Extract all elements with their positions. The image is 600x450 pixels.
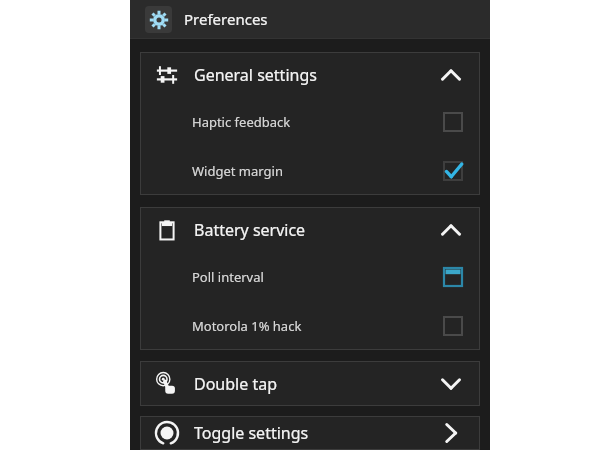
button[interactable]: Toggle settings	[140, 416, 480, 450]
button[interactable]: Checkbox unchecked	[442, 111, 464, 133]
staticText: Poll interval	[192, 268, 442, 286]
button[interactable]: Battery service	[140, 207, 480, 252]
button[interactable]: Poll interval	[140, 252, 480, 301]
other: Collapse	[436, 60, 466, 90]
button[interactable]: Checkbox checked	[442, 160, 464, 182]
staticText: General settings	[194, 64, 436, 86]
button[interactable]: Haptic feedback	[140, 97, 480, 146]
button[interactable]: Motorola 1% hack	[140, 301, 480, 350]
button[interactable]: Double tap	[140, 361, 480, 406]
staticText: Motorola 1% hack	[192, 317, 442, 335]
staticText: Preferences	[184, 9, 268, 29]
other: Expand	[436, 369, 466, 399]
staticText: Haptic feedback	[192, 113, 442, 131]
staticText: Toggle settings	[194, 422, 436, 444]
staticText: Double tap	[194, 373, 436, 395]
staticText: Widget margin	[192, 162, 442, 180]
button[interactable]: General settings	[140, 52, 480, 97]
button[interactable]: Preferences	[130, 0, 490, 38]
other: Open	[436, 418, 466, 448]
staticText: Battery service	[194, 219, 436, 241]
other: Collapse	[436, 215, 466, 245]
button[interactable]: Widget margin	[140, 146, 480, 195]
button[interactable]: Checkbox unchecked	[442, 315, 464, 337]
button[interactable]: Poll interval setting	[442, 266, 464, 288]
